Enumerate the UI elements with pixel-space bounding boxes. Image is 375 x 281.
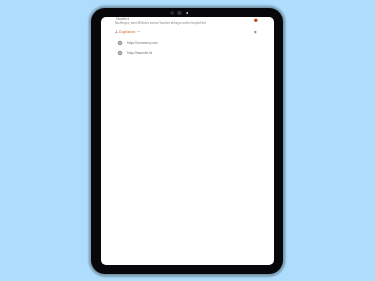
- button[interactable]: Zugelassen: [115, 29, 140, 34]
- button[interactable]: Weitere Optionen: [251, 28, 259, 36]
- button[interactable]: https://www.dei.de: [101, 48, 274, 58]
- button[interactable]: Konto: [251, 17, 259, 25]
- staticText: Zugelassen: [119, 30, 136, 34]
- button[interactable]: https://connectmy.com: [101, 38, 274, 48]
- staticText: https://www.dei.de: [127, 51, 153, 55]
- staticText: Nachfragen, wenn Websites meinen Standor…: [115, 21, 207, 25]
- staticText: https://connectmy.com: [127, 41, 158, 45]
- staticText: Standort: [116, 17, 129, 21]
